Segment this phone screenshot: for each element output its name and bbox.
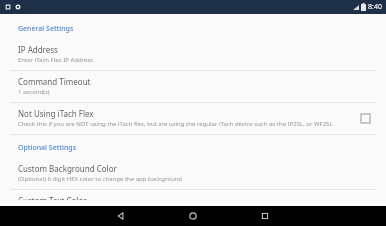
button[interactable]: Not Using iTach Flex checkbox (356, 109, 374, 127)
staticText: Check this if you are NOT using the iTac… (18, 120, 333, 128)
button[interactable]: Command Timeout (0, 71, 386, 102)
button[interactable]: Custom Background Color (0, 158, 386, 189)
button[interactable]: IP Address (0, 39, 386, 70)
button[interactable]: Back (98, 206, 144, 226)
staticText: Command Timeout (18, 76, 91, 87)
staticText: Custom Text Color (18, 195, 87, 200)
button[interactable]: Home (170, 206, 216, 226)
button[interactable]: Not Using iTach Flex (0, 103, 386, 134)
staticText: Optional Settings (18, 143, 77, 153)
staticText: 1 second(s) (18, 88, 50, 96)
staticText: (Optional) 6 digit HEX color to change t… (18, 175, 182, 183)
staticText: Not Using iTach Flex (18, 108, 94, 119)
staticText: 8:40 (368, 2, 382, 12)
staticText: IP Address (18, 44, 58, 55)
staticText: General Settings (18, 24, 74, 34)
staticText: Custom Background Color (18, 163, 117, 174)
staticText: Enter iTach Flex IP Address (18, 56, 94, 64)
button[interactable]: Custom Text Color (0, 190, 386, 206)
button[interactable]: Recent apps (242, 206, 288, 226)
